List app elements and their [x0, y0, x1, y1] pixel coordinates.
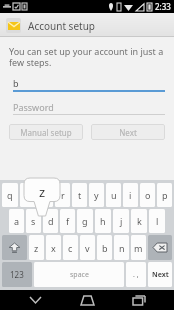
button[interactable]: Recents: [122, 290, 156, 310]
button[interactable]: k: [131, 209, 147, 233]
staticText: c: [68, 242, 73, 254]
staticText: n: [119, 242, 125, 254]
staticText: j: [120, 215, 123, 227]
staticText: t: [78, 189, 82, 201]
staticText: p: [162, 189, 168, 201]
staticText: 2:33: [155, 1, 171, 12]
staticText: d: [48, 215, 54, 227]
button[interactable]: u: [106, 183, 121, 207]
button[interactable]: 123: [2, 262, 32, 287]
staticText: space: [70, 270, 89, 280]
button[interactable]: f: [60, 209, 75, 233]
staticText: 123: [10, 269, 24, 280]
staticText: z: [39, 183, 46, 201]
staticText: r: [61, 189, 65, 201]
button[interactable]: q: [2, 183, 18, 207]
staticText: s: [31, 215, 36, 227]
staticText: x: [51, 242, 56, 254]
staticText: y: [94, 189, 99, 201]
button[interactable]: x: [46, 235, 61, 260]
staticText: o: [145, 189, 151, 201]
button[interactable]: t: [72, 183, 87, 207]
staticText: b: [13, 77, 19, 89]
staticText: a: [14, 215, 20, 227]
staticText: l: [156, 215, 159, 227]
button[interactable]: a: [9, 209, 24, 233]
button[interactable]: b: [97, 235, 112, 260]
staticText: z: [34, 242, 39, 254]
button[interactable]: v: [80, 235, 95, 260]
button[interactable]: o: [140, 183, 155, 207]
staticText: m: [134, 242, 143, 254]
button[interactable]: n: [114, 235, 129, 260]
button[interactable]: s: [26, 209, 41, 233]
button[interactable]: Next: [91, 124, 165, 140]
button[interactable]: j: [113, 209, 129, 233]
button[interactable]: r: [55, 183, 70, 207]
staticText: w: [24, 189, 32, 201]
staticText: Account setup: [28, 19, 95, 33]
button[interactable]: Home: [70, 290, 104, 310]
button[interactable]: c: [63, 235, 78, 260]
staticText: b: [102, 242, 108, 254]
staticText: u: [111, 189, 117, 201]
button[interactable]: i: [123, 183, 138, 207]
button[interactable]: . ,: [126, 262, 146, 287]
staticText: Next: [119, 127, 137, 138]
button[interactable]: Next: [148, 262, 172, 287]
button[interactable]: z: [29, 235, 44, 260]
button[interactable]: g: [77, 209, 93, 233]
staticText: Next: [152, 270, 169, 280]
button[interactable]: w: [20, 183, 36, 207]
button[interactable]: h: [95, 209, 111, 233]
staticText: v: [85, 242, 90, 254]
staticText: i: [129, 189, 132, 201]
button[interactable]: y: [89, 183, 104, 207]
button[interactable]: Hide keyboard: [18, 290, 52, 310]
staticText: g: [82, 215, 88, 227]
staticText: h: [100, 215, 106, 227]
staticText: k: [137, 215, 142, 227]
button[interactable]: m: [131, 235, 146, 260]
button[interactable]: e: [38, 183, 53, 207]
button[interactable]: Shift: [2, 235, 27, 260]
staticText: q: [7, 189, 13, 201]
button[interactable]: space: [34, 262, 124, 287]
button[interactable]: Backspace: [148, 235, 172, 260]
button[interactable]: l: [149, 209, 165, 233]
staticText: Password: [13, 101, 54, 113]
staticText: You can set up your account in just a fe…: [9, 45, 165, 69]
staticText: f: [66, 215, 70, 227]
button[interactable]: d: [43, 209, 58, 233]
button[interactable]: Manual setup: [9, 124, 83, 140]
staticText: Manual setup: [20, 127, 72, 138]
button[interactable]: p: [157, 183, 172, 207]
staticText: e: [43, 189, 49, 201]
staticText: . ,: [133, 270, 139, 280]
